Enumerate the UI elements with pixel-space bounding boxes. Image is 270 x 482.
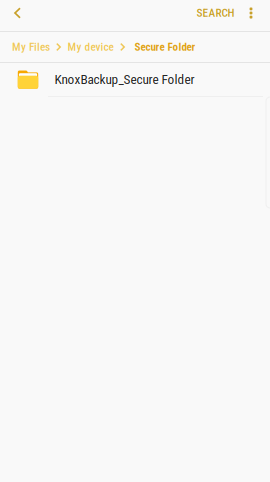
staticText: KnoxBackup_Secure Folder [54,72,194,87]
staticText: My device [67,40,113,54]
button[interactable]: My Files [10,40,53,54]
button[interactable]: More options [237,0,265,26]
button[interactable]: Secure Folder [134,40,197,53]
button[interactable]: SEARCH [188,0,237,26]
button[interactable]: My device [66,40,114,54]
staticText: Secure Folder [134,40,195,53]
staticText: My Files [12,40,50,54]
button[interactable]: KnoxBackup_Secure Folder [0,63,270,96]
staticText: SEARCH [196,6,234,20]
button[interactable]: Navigate up [0,0,35,26]
